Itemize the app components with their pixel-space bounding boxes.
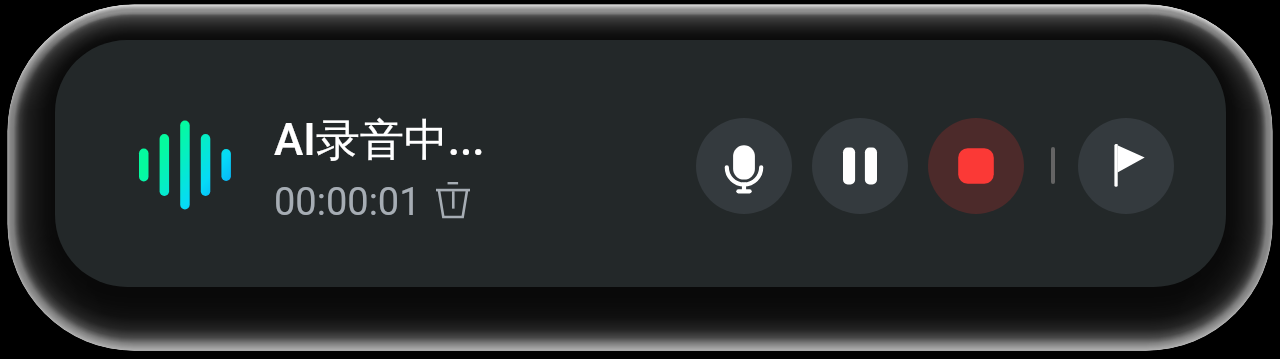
staticText: AI录音中... [274, 113, 485, 168]
button[interactable]: Pause [812, 118, 908, 214]
button[interactable]: Delete recording [436, 182, 470, 219]
button[interactable]: Microphone [696, 118, 792, 214]
button[interactable]: Add marker [1078, 118, 1174, 214]
button[interactable]: Stop recording [928, 118, 1024, 214]
staticText: 00:00:01 [274, 180, 421, 225]
